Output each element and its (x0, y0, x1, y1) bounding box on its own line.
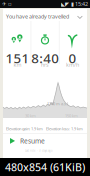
staticText: 1740 m a.s.l. (47, 101, 69, 106)
staticText: 30 km (25, 113, 36, 118)
staticText: 0 (69, 49, 77, 67)
staticText: hrs (41, 61, 49, 68)
staticText: km (13, 61, 21, 68)
button[interactable]: Change range (75, 12, 85, 23)
staticText: ✈ ▫ (2, 1, 12, 7)
staticText: ◣◤ ▮ 15:42 (61, 0, 88, 8)
staticText: km/h (66, 61, 79, 68)
staticText: 151 (5, 49, 29, 67)
staticText: Last ride · 3 days ago (25, 149, 53, 152)
button[interactable]: Resume (3, 134, 87, 148)
staticText: 8:40 (31, 49, 59, 67)
staticText: 150 km (65, 113, 78, 118)
staticText: 480x854 (61KiB) (5, 160, 85, 174)
staticText: You have already travelled (6, 13, 69, 20)
staticText: Elevation gain: 1.9 km Elevation loss: 1… (6, 126, 83, 131)
staticText: Resume (20, 137, 45, 145)
